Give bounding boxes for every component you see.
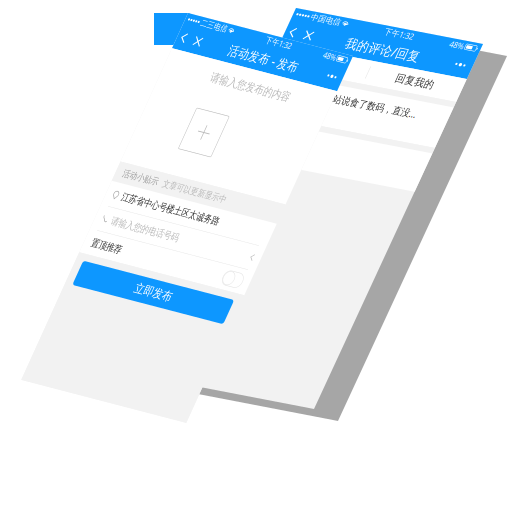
- staticText: 活动小贴示: [16, 278, 96, 297]
- staticText: 小三岁小站说食了数码，直没…: [78, 128, 313, 151]
- staticText: 请输入您发布的内容: [105, 82, 285, 107]
- staticText: 下午1:32: [183, 0, 241, 20]
- button[interactable]: 回复我的: [188, 64, 375, 106]
- staticText: 回复我的: [243, 73, 319, 96]
- staticText: 48%: [313, 0, 341, 20]
- staticText: 文章可以更新显示中: [96, 278, 250, 297]
- staticText: 48%: [313, 0, 341, 20]
- staticText: 下午1:32: [183, 0, 241, 20]
- button[interactable]: 更多: [327, 20, 375, 64]
- staticText: 活动发布 - 发布: [117, 27, 274, 57]
- staticText: 江苏省中心号楼土区太诚务路: [35, 316, 256, 337]
- staticText: 我的评论/回复: [122, 27, 269, 57]
- button[interactable]: 更多: [327, 20, 375, 64]
